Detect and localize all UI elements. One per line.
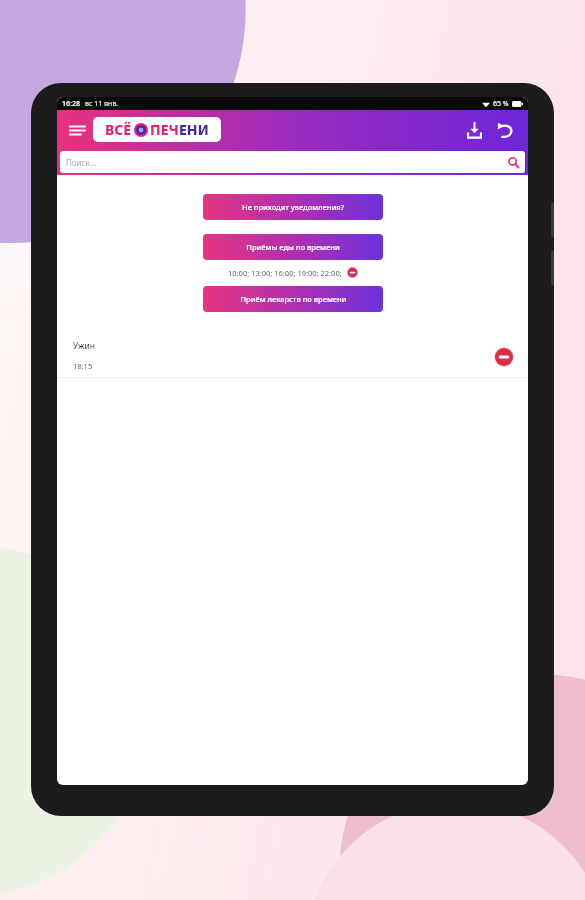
staticText: 10:00; 13:00; 16:00; 19:00; 22:00;	[228, 268, 342, 278]
button[interactable]: Ужин	[57, 338, 528, 377]
staticText: Ужин	[73, 340, 95, 352]
button[interactable]: Не приходят уведомления?	[203, 194, 383, 220]
staticText: 16:28	[62, 99, 80, 109]
staticText: 65 %	[493, 99, 509, 109]
staticText: вс 11 янв.	[85, 99, 119, 109]
staticText: Поиск...	[66, 157, 97, 168]
staticText: Приём лекарств по времени	[240, 294, 347, 304]
button[interactable]: Меню	[64, 117, 90, 143]
staticText: ВСЁ	[105, 120, 132, 139]
button[interactable]: Удалить	[494, 347, 514, 367]
staticText: Приёмы еды по времени	[246, 242, 340, 252]
staticText: 18:15	[73, 361, 93, 371]
button[interactable]: Удалить	[347, 267, 358, 278]
staticText: Не приходят уведомления?	[242, 202, 344, 212]
button[interactable]: Отменить	[491, 115, 521, 145]
staticText: ЕНИ	[179, 120, 209, 139]
button[interactable]: Скачать	[459, 115, 489, 145]
button[interactable]: Поиск...	[60, 151, 525, 173]
button[interactable]: Приём лекарств по времени	[203, 286, 383, 312]
staticText: ПЕЧ	[150, 120, 179, 139]
button[interactable]: Приёмы еды по времени	[203, 234, 383, 260]
button[interactable]: ВСЁ	[93, 117, 221, 142]
